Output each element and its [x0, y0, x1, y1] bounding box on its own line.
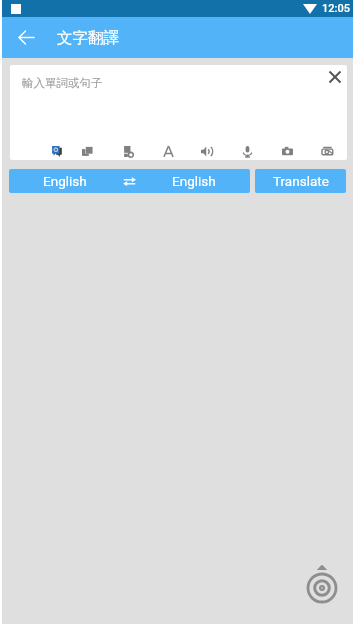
button[interactable]: Dictionary	[120, 143, 136, 159]
button[interactable]: Camera	[279, 143, 295, 159]
button[interactable]: Clear	[324, 66, 346, 88]
button[interactable]: English	[9, 169, 121, 193]
staticText: 文字翻譯	[57, 28, 119, 48]
button[interactable]: Scan	[319, 143, 335, 159]
staticText: Translate	[273, 173, 329, 189]
button[interactable]: Translate bubble	[48, 143, 64, 159]
staticText: English	[172, 173, 216, 189]
button[interactable]: Swap languages	[121, 173, 137, 189]
button[interactable]: Back	[18, 29, 35, 46]
staticText: 輸入單詞或句子	[22, 76, 103, 90]
button[interactable]: Font size	[160, 143, 176, 159]
button[interactable]: Assistive touch	[302, 565, 342, 605]
staticText: English	[43, 173, 87, 189]
button[interactable]: Copy	[79, 143, 95, 159]
button[interactable]: English	[137, 169, 250, 193]
button[interactable]: Translate	[255, 169, 346, 193]
staticText: 12:05	[322, 2, 350, 15]
button[interactable]: Speak	[198, 143, 214, 159]
button[interactable]: Microphone	[239, 143, 255, 159]
